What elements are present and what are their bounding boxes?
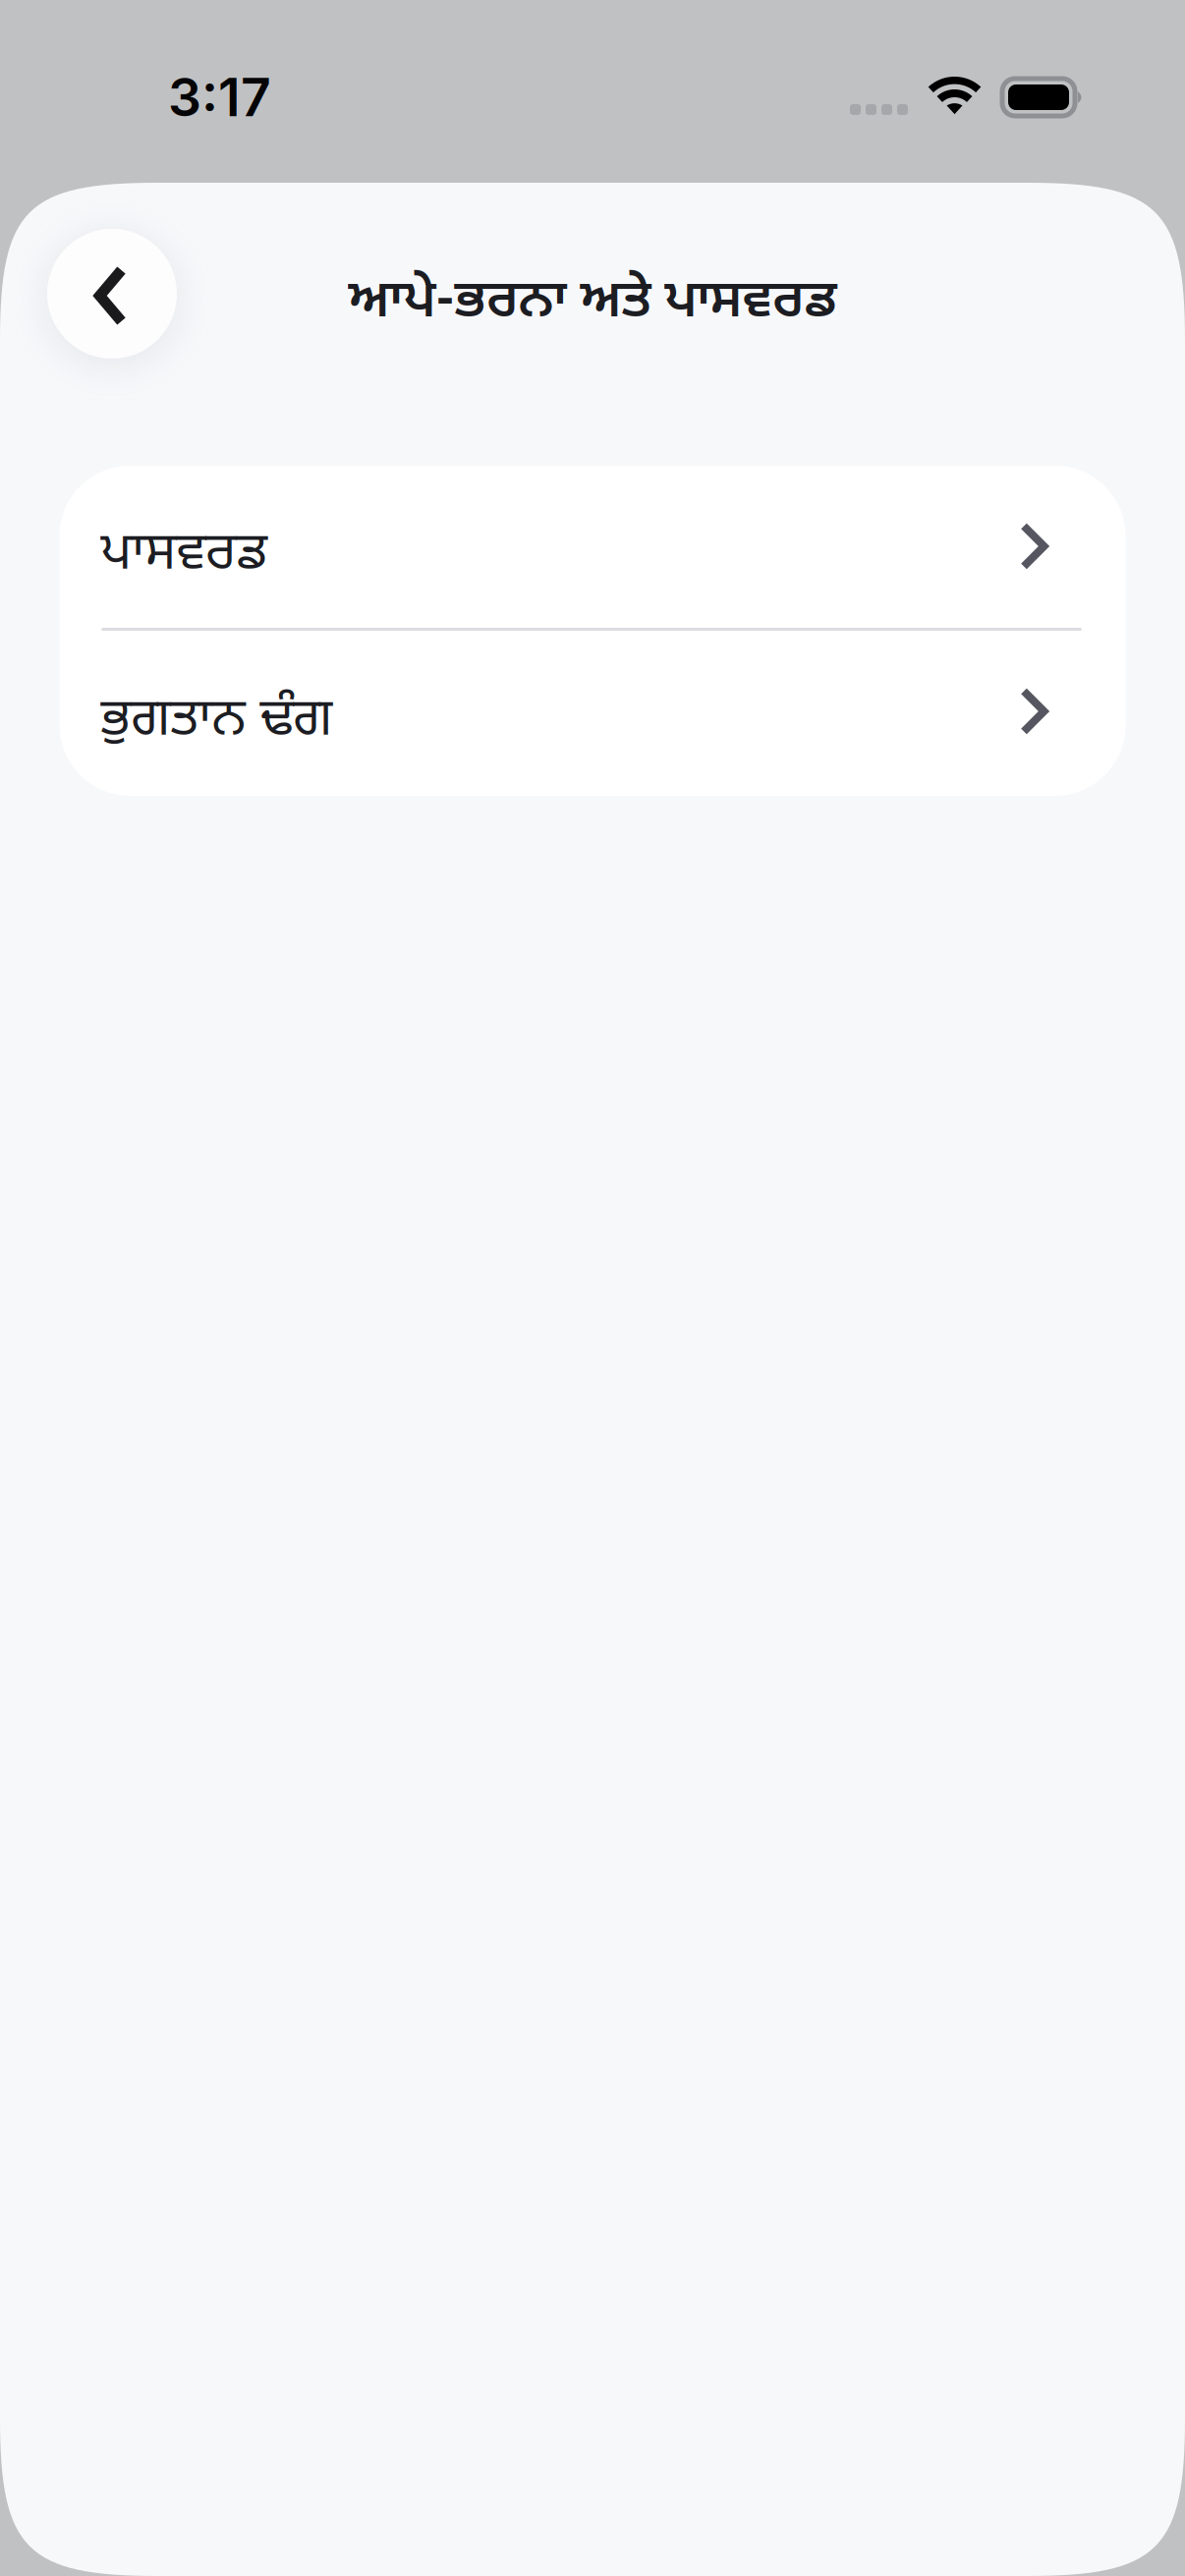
staticText: ਪਾਸਵਰਡ xyxy=(101,522,268,590)
staticText: ਆਪੇ-ਭਰਨਾ ਅਤੇ ਪਾਸਵਰਡ xyxy=(348,269,837,338)
button[interactable]: ਪਾਸਵਰਡ xyxy=(59,466,1126,628)
staticText: 3:17 xyxy=(168,65,271,129)
button[interactable]: Back xyxy=(47,229,177,359)
staticText: ਭੁਗਤਾਨ ਢੰਗ xyxy=(101,688,333,756)
button[interactable]: ਭੁਗਤਾਨ ਢੰਗ xyxy=(59,631,1126,796)
